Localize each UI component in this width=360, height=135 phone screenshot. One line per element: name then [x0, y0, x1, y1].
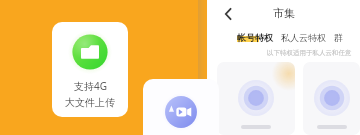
- button[interactable]: 群: [334, 32, 343, 43]
- button[interactable]: 帐号特权: [237, 32, 273, 43]
- staticText: 支持4G: [74, 79, 107, 93]
- button[interactable]: 支持4G: [52, 22, 128, 117]
- button[interactable]: [217, 62, 295, 135]
- staticText: 市集: [273, 6, 295, 20]
- button[interactable]: 私人云特权: [281, 32, 326, 43]
- staticText: 帐号特权: [237, 32, 273, 43]
- button[interactable]: [143, 79, 219, 135]
- staticText: 以下特权适用于私人云和任意: [267, 49, 352, 57]
- button[interactable]: [303, 62, 360, 135]
- button[interactable]: Back: [217, 4, 237, 24]
- staticText: 大文件上传: [65, 96, 115, 109]
